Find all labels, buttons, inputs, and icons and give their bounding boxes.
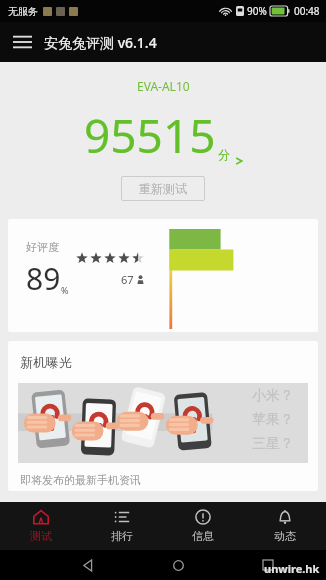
staticText: 95515	[84, 104, 216, 167]
staticText: 00:48	[294, 4, 320, 18]
staticText: 重新测试	[139, 181, 187, 196]
button[interactable]: 95515	[84, 104, 243, 167]
staticText: 90%	[247, 4, 267, 18]
button[interactable]: 测试	[0, 502, 81, 550]
button[interactable]: 新机曝光	[8, 341, 318, 491]
staticText: 测试	[30, 529, 52, 543]
staticText: 89	[26, 258, 61, 299]
staticText: 排行	[111, 529, 133, 543]
staticText: 安兔兔评测 v6.1.4	[44, 33, 157, 52]
staticText: 好评度	[26, 240, 59, 254]
staticText: 新机曝光	[20, 354, 72, 370]
staticText: 无服务	[8, 5, 38, 18]
staticText: 苹果？	[252, 411, 294, 429]
button[interactable]: 动态	[244, 502, 326, 550]
staticText: EVA-AL10	[137, 78, 190, 94]
button[interactable]: 好评度	[8, 219, 318, 332]
button[interactable]: 排行	[81, 502, 162, 550]
button[interactable]: Recents	[250, 550, 286, 580]
staticText: 动态	[274, 529, 296, 543]
button[interactable]: Home	[160, 550, 196, 580]
staticText: %	[61, 284, 69, 296]
button[interactable]: Back	[70, 550, 106, 580]
staticText: 分	[218, 147, 230, 162]
staticText: 信息	[192, 529, 214, 543]
button[interactable]: Menu	[0, 22, 44, 62]
staticText: unwire.hk	[264, 561, 320, 576]
staticText: 小米？	[252, 387, 294, 405]
button[interactable]: 信息	[162, 502, 244, 550]
staticText: 67	[121, 272, 134, 287]
staticText: 即将发布的最新手机资讯	[20, 473, 141, 487]
staticText: 三星？	[252, 435, 294, 453]
button[interactable]: 重新测试	[121, 176, 205, 201]
